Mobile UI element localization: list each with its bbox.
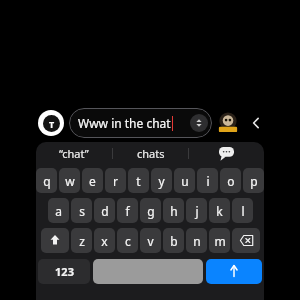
button[interactable]: c — [117, 228, 138, 253]
button[interactable]: d — [94, 198, 115, 223]
button[interactable]: j — [186, 198, 207, 223]
button[interactable]: r — [105, 168, 126, 193]
button[interactable]: y — [151, 168, 172, 193]
button[interactable]: Change input — [190, 114, 208, 132]
button[interactable]: m — [209, 228, 230, 253]
staticText: v — [147, 233, 154, 249]
button[interactable]: s — [71, 198, 92, 223]
button[interactable]: Enter — [206, 259, 262, 284]
staticText: a — [55, 203, 62, 219]
button[interactable]: p — [243, 168, 264, 193]
button[interactable]: x — [94, 228, 115, 253]
button[interactable]: i — [197, 168, 218, 193]
button[interactable]: 123 — [38, 259, 90, 284]
staticText: o — [227, 173, 235, 189]
button[interactable]: a — [48, 198, 69, 223]
staticText: T — [49, 118, 55, 130]
button[interactable]: b — [163, 228, 184, 253]
button[interactable]: u — [174, 168, 195, 193]
staticText: Www in the chat — [78, 115, 171, 131]
staticText: j — [195, 203, 199, 219]
staticText: i — [206, 173, 210, 189]
button[interactable]: g — [140, 198, 161, 223]
button[interactable]: t — [128, 168, 149, 193]
staticText: q — [43, 173, 51, 189]
button[interactable]: Space — [93, 259, 203, 284]
button[interactable]: n — [186, 228, 207, 253]
staticText: 123 — [55, 264, 74, 279]
button[interactable]: w — [59, 168, 80, 193]
staticText: z — [79, 233, 85, 249]
button[interactable]: l — [232, 198, 253, 223]
button[interactable]: e — [82, 168, 103, 193]
staticText: e — [89, 173, 96, 189]
button[interactable]: Shift — [41, 228, 69, 253]
button[interactable]: Backspace — [232, 228, 260, 253]
button[interactable]: q — [36, 168, 57, 193]
staticText: x — [101, 233, 108, 249]
staticText: h — [170, 203, 178, 219]
button[interactable]: Emoji — [189, 142, 264, 165]
staticText: u — [181, 173, 189, 189]
staticText: y — [158, 173, 165, 189]
staticText: f — [125, 203, 130, 219]
button[interactable]: chats — [113, 142, 188, 165]
button[interactable]: Text input mode — [38, 110, 64, 136]
staticText: l — [241, 203, 245, 219]
button[interactable]: k — [209, 198, 230, 223]
staticText: c — [125, 233, 131, 249]
button[interactable]: Www in the chat — [69, 108, 212, 138]
staticText: t — [136, 173, 141, 189]
staticText: w — [65, 173, 75, 189]
staticText: g — [147, 203, 155, 219]
staticText: p — [250, 173, 258, 189]
staticText: chats — [137, 146, 165, 161]
staticText: n — [193, 233, 201, 249]
button[interactable]: Back — [246, 113, 266, 133]
staticText: s — [79, 203, 85, 219]
staticText: m — [214, 233, 226, 249]
staticText: k — [216, 203, 223, 219]
staticText: d — [101, 203, 109, 219]
staticText: r — [113, 173, 118, 189]
button[interactable]: v — [140, 228, 161, 253]
button[interactable]: z — [71, 228, 92, 253]
button[interactable]: Contact avatar — [216, 111, 240, 135]
button[interactable]: “chat” — [36, 142, 112, 165]
button[interactable]: f — [117, 198, 138, 223]
button[interactable]: h — [163, 198, 184, 223]
staticText: “chat” — [59, 146, 89, 161]
staticText: b — [170, 233, 178, 249]
button[interactable]: o — [220, 168, 241, 193]
